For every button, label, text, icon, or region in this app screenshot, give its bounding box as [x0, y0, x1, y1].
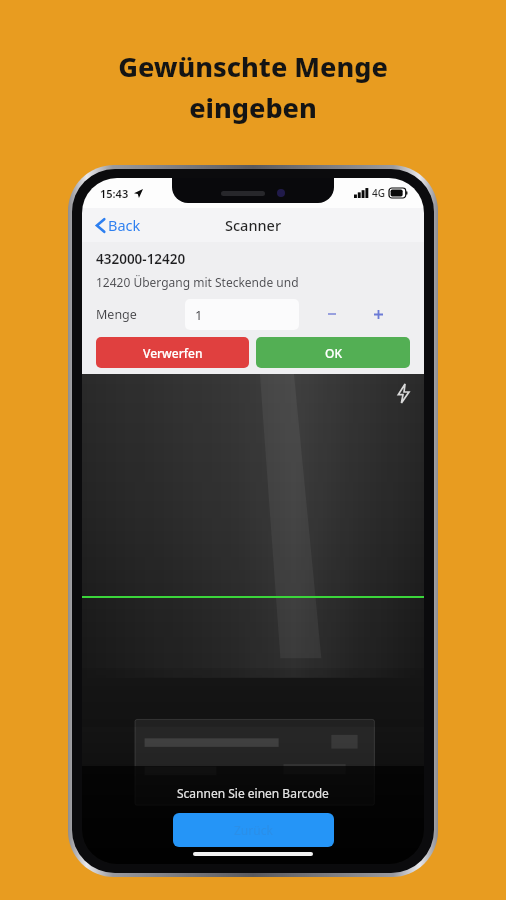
staticText: Gewünschte Menge — [0, 48, 506, 85]
staticText: 12420 Übergang mit Steckende und — [96, 274, 299, 290]
button[interactable]: Back — [90, 211, 147, 239]
staticText: 4G — [372, 186, 385, 200]
button[interactable]: Toggle flash — [390, 380, 416, 406]
staticText: Scanner — [225, 215, 282, 235]
staticText: Back — [108, 215, 141, 235]
button[interactable]: OK — [256, 337, 410, 368]
staticText: 1 — [195, 306, 203, 324]
staticText: Menge — [96, 306, 137, 323]
staticText: 15:43 — [100, 186, 129, 201]
button[interactable]: 1 — [185, 299, 299, 330]
staticText: 432000-12420 — [96, 250, 186, 268]
staticText: Verwerfen — [143, 345, 203, 361]
button[interactable]: Increase quantity — [367, 303, 389, 325]
staticText: OK — [325, 345, 342, 361]
button[interactable]: Decrease quantity — [321, 303, 343, 325]
staticText: Zurück — [234, 822, 273, 838]
button[interactable]: Zurück — [173, 813, 334, 847]
button[interactable]: Verwerfen — [96, 337, 249, 368]
staticText: eingeben — [0, 89, 506, 126]
staticText: Scannen Sie einen Barcode — [177, 785, 329, 801]
